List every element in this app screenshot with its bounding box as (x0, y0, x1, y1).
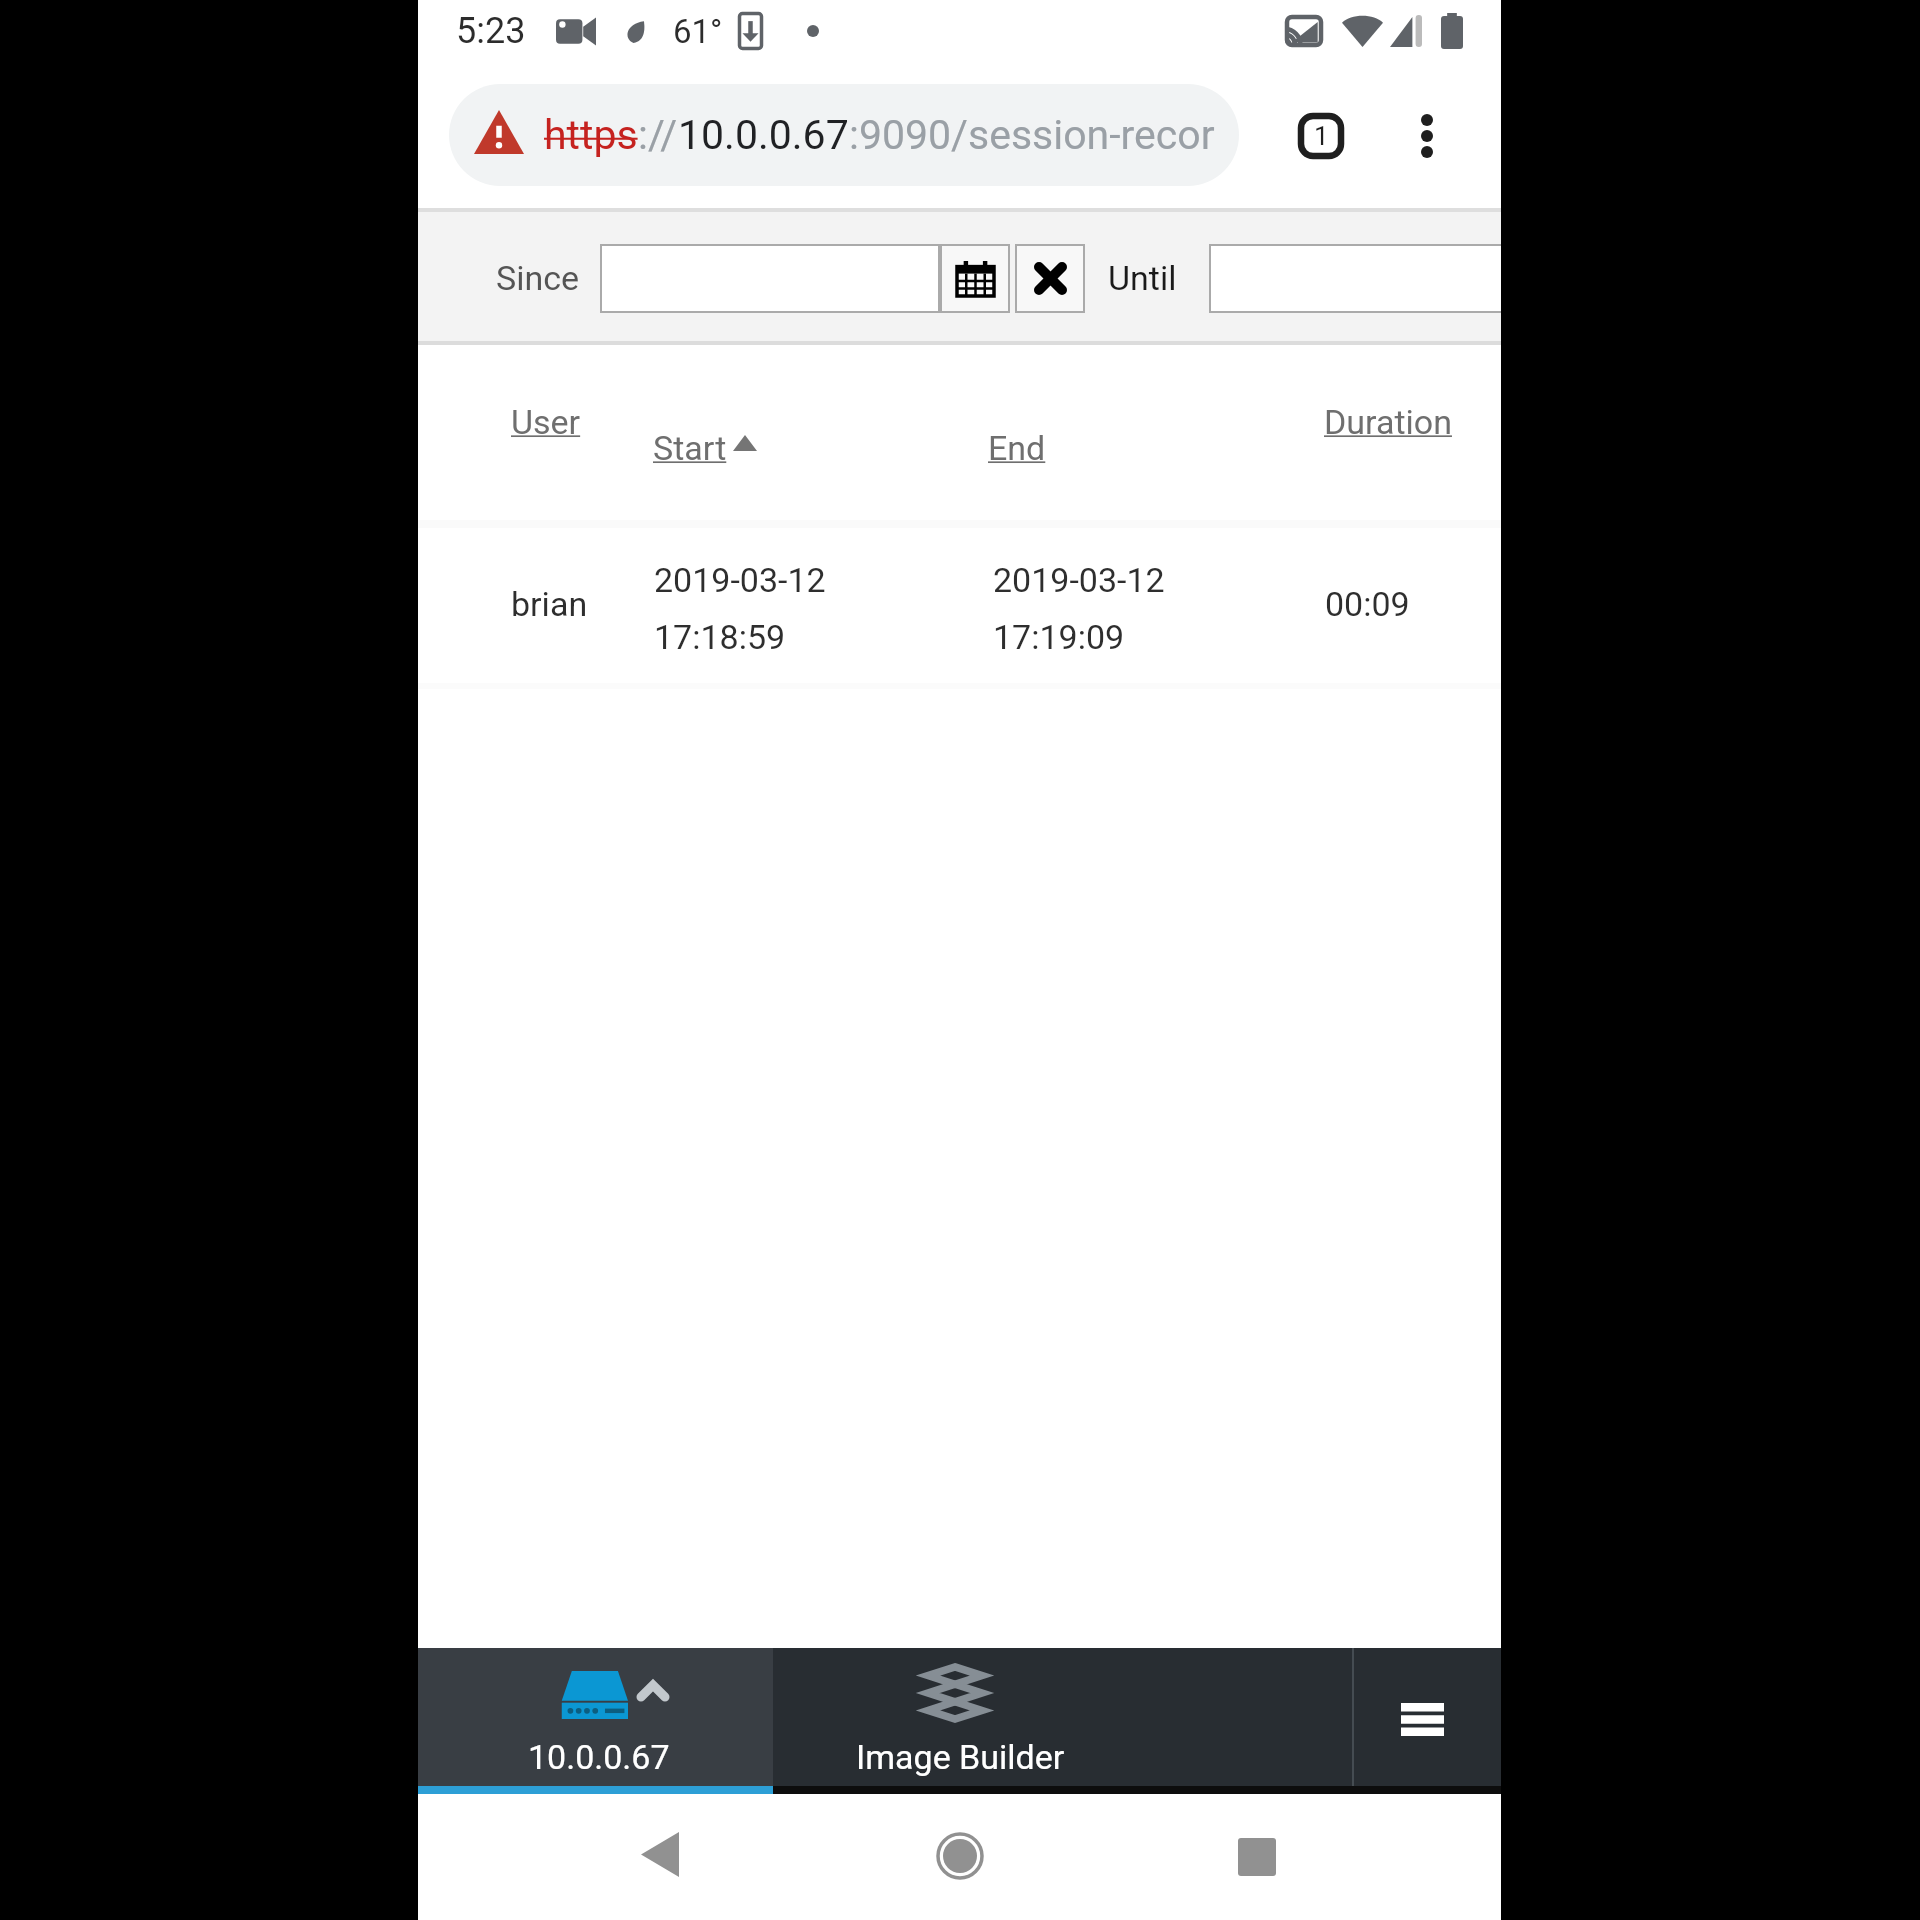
staticText: Until (1108, 258, 1177, 298)
staticText: Duration (1324, 402, 1452, 442)
staticText: Since (496, 258, 580, 298)
staticText: 1 (1314, 121, 1329, 151)
staticText: Start (653, 428, 727, 468)
button[interactable]: https (449, 84, 1239, 186)
staticText: https (544, 111, 638, 159)
staticText: User (511, 402, 581, 442)
button[interactable]: Back (641, 1832, 679, 1877)
button[interactable]: End (988, 428, 1046, 468)
staticText: 17:18:59 (654, 617, 786, 657)
staticText: 2019-03-12 (654, 560, 826, 600)
button[interactable]: Clear (1017, 246, 1083, 311)
staticText: 17:19:09 (993, 617, 1125, 657)
button[interactable]: More options (1380, 89, 1473, 182)
button[interactable]: brian (418, 528, 1501, 683)
button[interactable]: Home (936, 1832, 984, 1880)
staticText: :9090/session-recor (849, 111, 1215, 159)
button[interactable]: Tabs (1274, 89, 1367, 182)
button[interactable]: Pick date (942, 246, 1008, 311)
staticText: 10.0.0.67 (678, 111, 849, 159)
button[interactable]: Menu (1354, 1648, 1501, 1786)
staticText: End (988, 428, 1046, 468)
button[interactable]: Image Builder (773, 1648, 1352, 1786)
staticText: 61° (673, 12, 723, 51)
button[interactable]: 10.0.0.67 (418, 1648, 773, 1786)
button[interactable]: Recents (1238, 1838, 1276, 1876)
staticText: 2019-03-12 (993, 560, 1165, 600)
button[interactable]: Duration (1324, 402, 1452, 442)
staticText: brian (511, 584, 588, 624)
staticText: 5:23 (456, 10, 526, 52)
staticText: Image Builder (856, 1737, 1065, 1777)
staticText: :// (638, 111, 678, 159)
button[interactable]: User (511, 402, 581, 442)
staticText: 00:09 (1325, 584, 1410, 624)
staticText: 10.0.0.67 (528, 1737, 670, 1777)
button[interactable]: Start (653, 428, 757, 468)
